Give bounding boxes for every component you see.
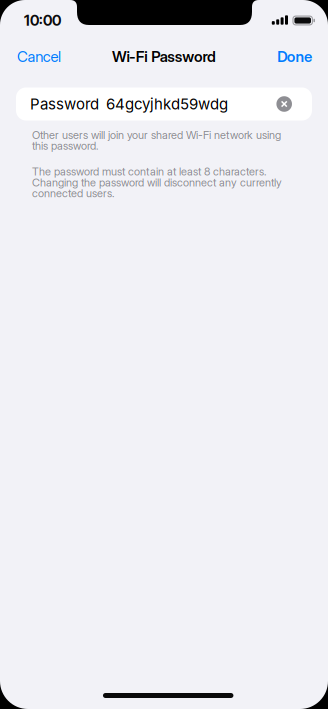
- staticText: The password must contain at least 8 cha…: [32, 166, 282, 199]
- button[interactable]: [276, 96, 292, 112]
- button[interactable]: Cancel: [17, 47, 61, 65]
- button[interactable]: Password: [16, 87, 312, 120]
- button[interactable]: Done: [277, 47, 312, 65]
- staticText: Password: [30, 95, 99, 113]
- staticText: 64gcyjhkd59wdg: [106, 95, 228, 113]
- staticText: Cancel: [17, 47, 61, 65]
- staticText: Done: [277, 47, 312, 65]
- staticText: Password: [151, 47, 216, 65]
- staticText: Other users will join your shared Wi-Fi …: [32, 129, 281, 151]
- staticText: Wi-Fi: [112, 47, 147, 65]
- staticText: 10:00: [24, 12, 61, 29]
